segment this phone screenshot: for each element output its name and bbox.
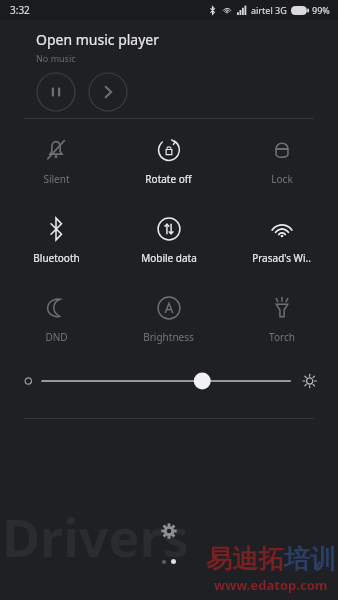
- button[interactable]: Open music player: [36, 30, 160, 49]
- staticText: 3:32: [10, 3, 30, 17]
- staticText: Mobile data: [141, 251, 197, 265]
- staticText: www.edatop.com: [214, 576, 328, 594]
- staticText: Bluetooth: [33, 251, 80, 265]
- staticText: Brightness: [143, 330, 194, 344]
- button[interactable]: Mobile data: [112, 216, 225, 265]
- staticText: Rotate off: [145, 172, 192, 186]
- staticText: Prasad's Wi..: [252, 251, 311, 265]
- button[interactable]: Settings: [155, 517, 183, 545]
- button[interactable]: Bluetooth: [0, 216, 112, 265]
- staticText: Torch: [269, 330, 295, 344]
- button[interactable]: Pause: [36, 72, 76, 112]
- button[interactable]: Next: [88, 72, 128, 112]
- staticText: No music: [36, 52, 76, 64]
- staticText: Lock: [271, 172, 293, 186]
- button[interactable]: Torch: [225, 295, 338, 344]
- staticText: Silent: [43, 172, 70, 186]
- button[interactable]: Rotate off: [112, 137, 225, 186]
- staticText: 培训: [284, 543, 336, 576]
- staticText: Drivers: [2, 501, 189, 572]
- staticText: 易迪: [206, 543, 258, 576]
- staticText: 拓: [258, 543, 284, 576]
- button[interactable]: DND: [0, 295, 112, 344]
- staticText: DND: [45, 330, 68, 344]
- staticText: airtel 3G: [251, 4, 287, 16]
- staticText: 99%: [312, 4, 330, 16]
- button[interactable]: Prasad's Wi..: [225, 216, 338, 265]
- button[interactable]: Lock: [225, 137, 338, 186]
- button[interactable]: Brightness slider: [24, 366, 314, 396]
- button[interactable]: Silent: [0, 137, 112, 186]
- button[interactable]: Brightness: [112, 295, 225, 344]
